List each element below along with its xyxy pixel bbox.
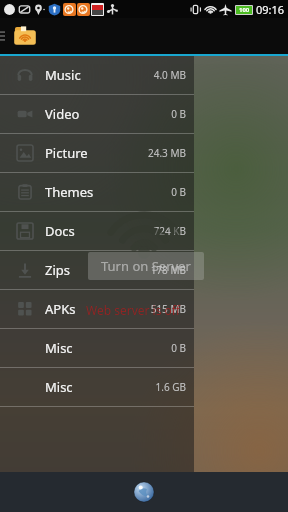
staticText: Picture: [45, 144, 88, 162]
staticText: 0 B: [171, 107, 186, 121]
staticText: Music: [45, 66, 81, 84]
staticText: 09:16: [256, 2, 285, 17]
staticText: Docs: [45, 222, 75, 240]
staticText: 4.0 MB: [153, 68, 186, 82]
button[interactable]: Music: [0, 56, 194, 94]
button[interactable]: Video: [0, 95, 194, 133]
staticText: Video: [45, 105, 80, 123]
button[interactable]: Browser: [131, 479, 157, 505]
staticText: 178 MB: [150, 263, 186, 277]
staticText: Web server is off: [86, 302, 181, 318]
button[interactable]: Misc: [0, 368, 194, 406]
button[interactable]: Open folder: [10, 21, 40, 51]
staticText: APKs: [45, 300, 76, 318]
button[interactable]: Docs: [0, 212, 194, 250]
staticText: Zips: [45, 261, 71, 279]
button[interactable]: Misc: [0, 329, 194, 367]
staticText: 0 B: [171, 185, 186, 199]
staticText: 100: [239, 6, 250, 14]
button[interactable]: Themes: [0, 173, 194, 211]
staticText: 24.3 MB: [147, 146, 186, 160]
staticText: 0 B: [171, 341, 186, 355]
staticText: Misc: [45, 378, 73, 396]
staticText: 515 MB: [150, 302, 186, 316]
staticText: 1.6 GB: [155, 380, 186, 394]
button[interactable]: Picture: [0, 134, 194, 172]
button[interactable]: Turn on Server: [88, 252, 204, 280]
button[interactable]: APKs: [0, 290, 194, 328]
staticText: 724 KB: [153, 224, 186, 238]
staticText: Turn on Server: [101, 257, 191, 275]
staticText: Themes: [45, 183, 94, 201]
button[interactable]: Zips: [0, 251, 194, 289]
staticText: Misc: [45, 339, 73, 357]
